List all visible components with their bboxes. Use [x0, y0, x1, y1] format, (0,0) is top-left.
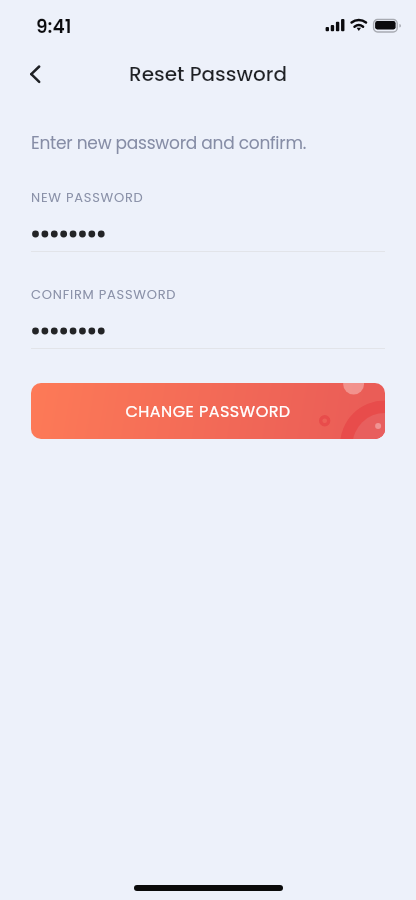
- staticText: CHANGE PASSWORD: [125, 400, 291, 422]
- staticText: Enter new password and confirm.: [31, 131, 306, 155]
- button[interactable]: Back: [14, 53, 56, 95]
- button[interactable]: CHANGE PASSWORD: [31, 383, 385, 439]
- staticText: NEW PASSWORD: [31, 188, 144, 206]
- staticText: CONFIRM PASSWORD: [31, 285, 177, 303]
- staticText: Reset Password: [129, 60, 287, 88]
- staticText: 9:41: [36, 14, 72, 40]
